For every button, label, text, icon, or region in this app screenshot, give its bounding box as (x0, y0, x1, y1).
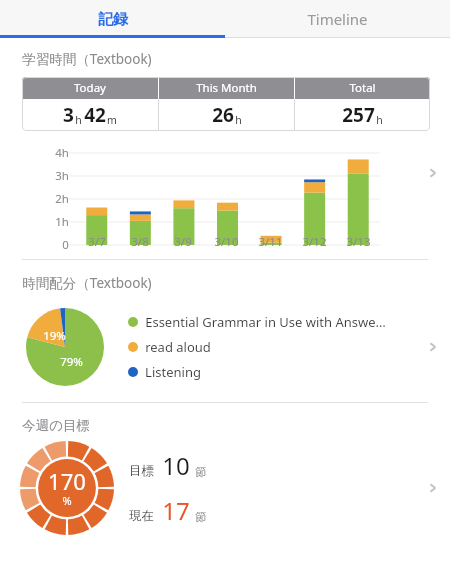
staticText: read aloud (145, 338, 211, 356)
staticText: Timeline (307, 9, 368, 29)
staticText: h (376, 113, 383, 127)
staticText: 3/12 (302, 234, 327, 250)
staticText: h (75, 113, 82, 127)
staticText: 節 (195, 510, 207, 524)
staticText: % (62, 493, 72, 508)
staticText: 3h (55, 168, 69, 184)
staticText: Today (74, 80, 106, 96)
staticText: 学習時間（Textbook) (22, 50, 152, 68)
staticText: 3/10 (214, 234, 239, 250)
button[interactable]: 19% (0, 292, 450, 402)
button[interactable]: 記録 (0, 0, 225, 38)
other: Open study time chart (415, 131, 450, 255)
staticText: Listening (145, 363, 201, 381)
staticText: 3/11 (258, 234, 283, 250)
staticText: Essential Grammar in Use with Answe… (145, 313, 386, 331)
button[interactable]: 4h (0, 131, 450, 255)
staticText: 節 (195, 465, 207, 479)
staticText: 現在 (129, 508, 154, 524)
staticText: 0 (62, 237, 69, 253)
button[interactable]: Today (22, 77, 430, 131)
staticText: 3/13 (346, 234, 371, 250)
staticText: m (107, 113, 117, 127)
staticText: 26 (212, 102, 234, 128)
staticText: 3 (63, 102, 74, 128)
staticText: 1h (55, 214, 69, 230)
staticText: 42 (84, 102, 106, 128)
button[interactable]: 170 (0, 434, 450, 542)
other: Open weekly goal (415, 434, 450, 542)
staticText: 17 (162, 494, 190, 527)
button[interactable]: Timeline (225, 0, 450, 38)
staticText: 3/9 (174, 234, 192, 250)
other: Open time distribution (415, 292, 450, 402)
staticText: 4h (55, 145, 69, 161)
staticText: 257 (342, 102, 375, 128)
staticText: 時間配分（Textbook) (22, 274, 152, 292)
staticText: 10 (162, 449, 190, 482)
staticText: Total (349, 80, 376, 96)
staticText: 2h (55, 191, 69, 207)
staticText: 記録 (98, 10, 128, 29)
staticText: 3/8 (131, 234, 149, 250)
staticText: h (235, 113, 242, 127)
staticText: 19% (43, 328, 66, 344)
staticText: 目標 (129, 463, 154, 479)
staticText: 3/7 (88, 234, 106, 250)
staticText: This Month (196, 80, 257, 96)
staticText: 170 (48, 466, 86, 496)
staticText: 今週の目標 (22, 417, 90, 434)
staticText: 79% (60, 354, 83, 370)
